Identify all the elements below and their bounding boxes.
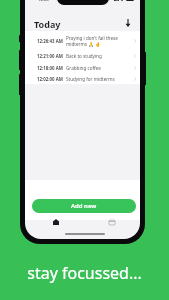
button[interactable]: 12:26:43 AM xyxy=(25,32,140,50)
button[interactable]: 12:02:00 AM xyxy=(25,74,140,84)
staticText: 12:18:00 AM xyxy=(37,65,63,71)
staticText: 12:02:00 AM xyxy=(37,76,63,82)
staticText: Grabbing coffee xyxy=(66,65,101,71)
button[interactable]: Download xyxy=(121,16,135,30)
staticText: Add new xyxy=(71,202,97,210)
button[interactable]: Calendar xyxy=(105,215,119,229)
staticText: Praying i don't fail these midterms 🙏 🤞 xyxy=(66,35,118,47)
button[interactable]: Home xyxy=(49,215,63,229)
staticText: stay focussed... xyxy=(0,262,169,284)
button[interactable]: Add new xyxy=(32,199,136,213)
staticText: 12:21:00 AM xyxy=(37,53,63,59)
staticText: Today xyxy=(34,18,61,30)
staticText: 12:26:43 AM xyxy=(37,38,63,44)
button[interactable]: 12:18:00 AM xyxy=(25,62,140,74)
button[interactable]: 12:21:00 AM xyxy=(25,50,140,62)
staticText: Studying for midterms xyxy=(66,76,115,82)
staticText: Back to studying xyxy=(66,53,102,59)
staticText: 12:26 xyxy=(38,0,49,3)
